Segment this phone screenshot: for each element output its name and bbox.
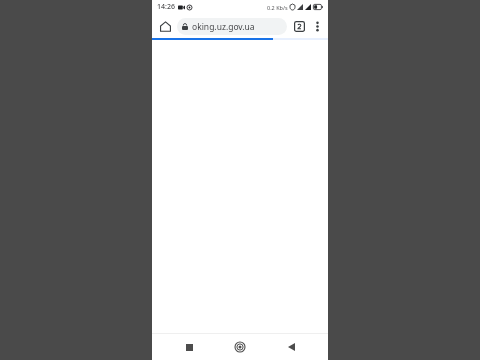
button[interactable]: Recent apps xyxy=(178,336,200,358)
button[interactable]: Back xyxy=(280,336,302,358)
staticText: oking.uz.gov.ua xyxy=(192,21,255,33)
button[interactable]: More options xyxy=(309,18,325,34)
staticText: 0.2 Kb/s xyxy=(267,4,288,11)
button[interactable]: Home xyxy=(155,16,175,36)
button[interactable]: Home xyxy=(229,336,251,358)
button[interactable]: oking.uz.gov.ua xyxy=(177,18,287,35)
button[interactable]: Tabs, 2 open xyxy=(289,16,309,36)
staticText: 14:26 xyxy=(157,2,175,12)
